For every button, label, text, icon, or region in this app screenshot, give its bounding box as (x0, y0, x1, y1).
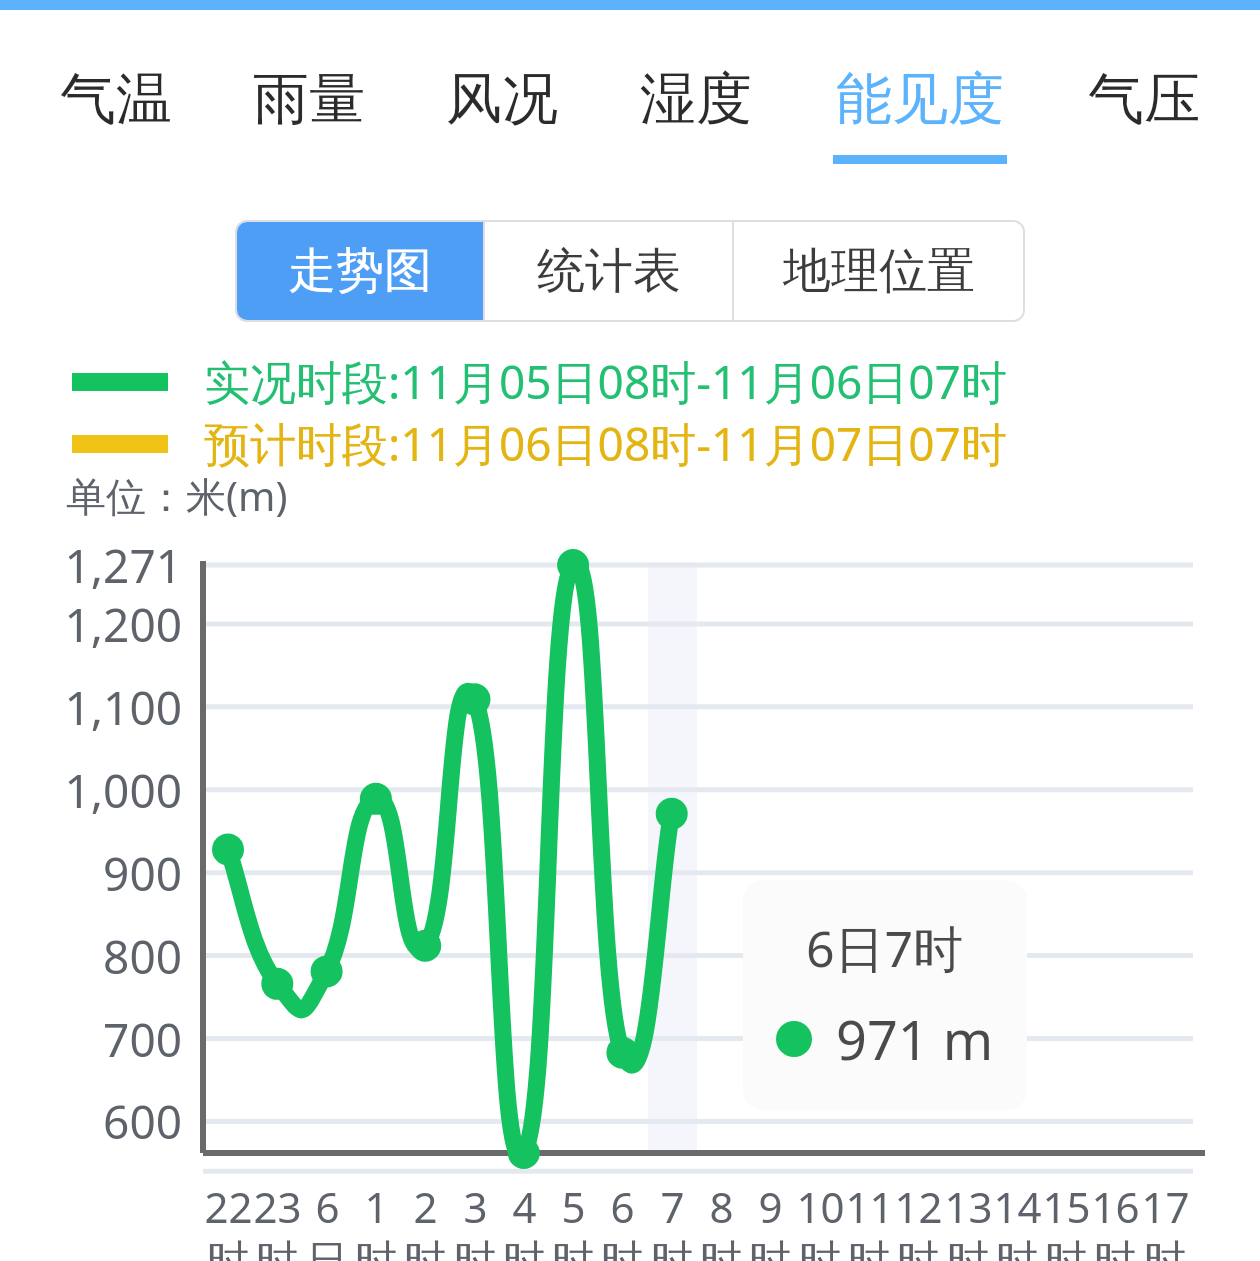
staticText: 时 (355, 1235, 397, 1261)
staticText: 15 (1042, 1178, 1091, 1235)
button[interactable]: 湿度 (640, 64, 752, 164)
staticText: 6 (610, 1178, 635, 1235)
staticText: 971 m (836, 1002, 994, 1076)
staticText: 能见度 (836, 64, 1004, 135)
staticText: 时 (404, 1235, 446, 1261)
staticText: 8 (709, 1178, 734, 1235)
staticText: 时 (503, 1235, 545, 1261)
staticText: 时 (601, 1235, 643, 1261)
staticText: 13 (944, 1178, 993, 1235)
staticText: 4 (512, 1178, 537, 1235)
staticText: 1,100 (64, 676, 182, 739)
staticText: 1,000 (64, 759, 182, 822)
button[interactable]: 风况 (446, 64, 558, 164)
button[interactable]: 地理位置 (734, 222, 1023, 320)
button[interactable]: 统计表 (485, 222, 732, 320)
staticText: 700 (103, 1008, 182, 1071)
staticText: 时 (1045, 1235, 1087, 1261)
staticText: 走势图 (288, 241, 432, 301)
staticText: 时 (749, 1235, 791, 1261)
staticText: 湿度 (640, 64, 752, 135)
staticText: 时 (1144, 1235, 1186, 1261)
staticText: 1 (364, 1178, 389, 1235)
staticText: 3 (463, 1178, 488, 1235)
staticText: 时 (207, 1235, 249, 1261)
staticText: 单位：米(m) (66, 468, 288, 523)
staticText: 16 (1091, 1178, 1140, 1235)
staticText: 气温 (60, 64, 172, 135)
staticText: 17 (1141, 1178, 1190, 1235)
staticText: 800 (103, 925, 182, 988)
staticText: 地理位置 (783, 241, 975, 301)
staticText: 10 (796, 1178, 845, 1235)
staticText: 时 (256, 1235, 298, 1261)
button[interactable]: 气温 (60, 64, 172, 164)
staticText: 时 (848, 1235, 890, 1261)
staticText: 23 (253, 1178, 302, 1235)
staticText: 风况 (446, 64, 558, 135)
staticText: 时 (947, 1235, 989, 1261)
staticText: 时 (454, 1235, 496, 1261)
staticText: 时 (897, 1235, 939, 1261)
staticText: 600 (103, 1090, 182, 1153)
staticText: 气压 (1088, 64, 1200, 135)
staticText: 时 (799, 1235, 841, 1261)
staticText: 12 (894, 1178, 943, 1235)
staticText: 日 (306, 1235, 348, 1261)
button[interactable]: 雨量 (253, 64, 365, 164)
staticText: 预计时段:11月06日08时-11月07日07时 (204, 412, 1007, 475)
staticText: 时 (700, 1235, 742, 1261)
staticText: 雨量 (253, 64, 365, 135)
staticText: 时 (552, 1235, 594, 1261)
button[interactable]: 6日7时 (743, 880, 1027, 1110)
button[interactable]: 能见度 (833, 64, 1007, 164)
staticText: 6日7时 (806, 914, 964, 982)
staticText: 时 (1094, 1235, 1136, 1261)
staticText: 11 (845, 1178, 894, 1235)
staticText: 14 (993, 1178, 1042, 1235)
staticText: 统计表 (537, 241, 681, 301)
staticText: 9 (758, 1178, 783, 1235)
staticText: 时 (651, 1235, 693, 1261)
staticText: 7 (660, 1178, 685, 1235)
staticText: 时 (996, 1235, 1038, 1261)
staticText: 实况时段:11月05日08时-11月06日07时 (204, 350, 1007, 413)
staticText: 1,271 (64, 534, 182, 597)
button[interactable]: 气压 (1088, 64, 1200, 164)
staticText: 5 (561, 1178, 586, 1235)
staticText: 6 (315, 1178, 340, 1235)
staticText: 22 (204, 1178, 253, 1235)
staticText: 2 (413, 1178, 438, 1235)
staticText: 1,200 (64, 593, 182, 656)
button[interactable]: 走势图 (237, 222, 483, 320)
staticText: 900 (103, 842, 182, 905)
